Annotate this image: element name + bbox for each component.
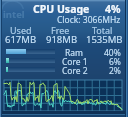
- button[interactable]: Ram: [0, 0, 128, 59]
- staticText: Core 2: [62, 65, 88, 77]
- staticText: CPU Usage: [33, 2, 90, 15]
- staticText: 918MB: [46, 33, 78, 46]
- staticText: 617MB: [5, 33, 37, 46]
- staticText: Clock: 3066MHz: [57, 14, 121, 26]
- staticText: Used: [10, 24, 32, 36]
- button[interactable]: CPU Usage: [0, 0, 128, 15]
- staticText: Core 1: [62, 56, 88, 68]
- staticText: 1535MB: [86, 33, 123, 46]
- staticText: Free: [51, 24, 70, 36]
- staticText: 4%: [105, 2, 121, 15]
- button[interactable]: Core 2: [0, 0, 128, 77]
- staticText: Ram: [65, 47, 84, 59]
- button[interactable]: Core 1: [0, 0, 128, 68]
- staticText: 40%: [104, 47, 121, 59]
- staticText: intel: [3, 8, 25, 21]
- staticText: 2%: [109, 65, 121, 77]
- staticText: 6%: [109, 56, 121, 68]
- staticText: Total: [92, 24, 113, 36]
